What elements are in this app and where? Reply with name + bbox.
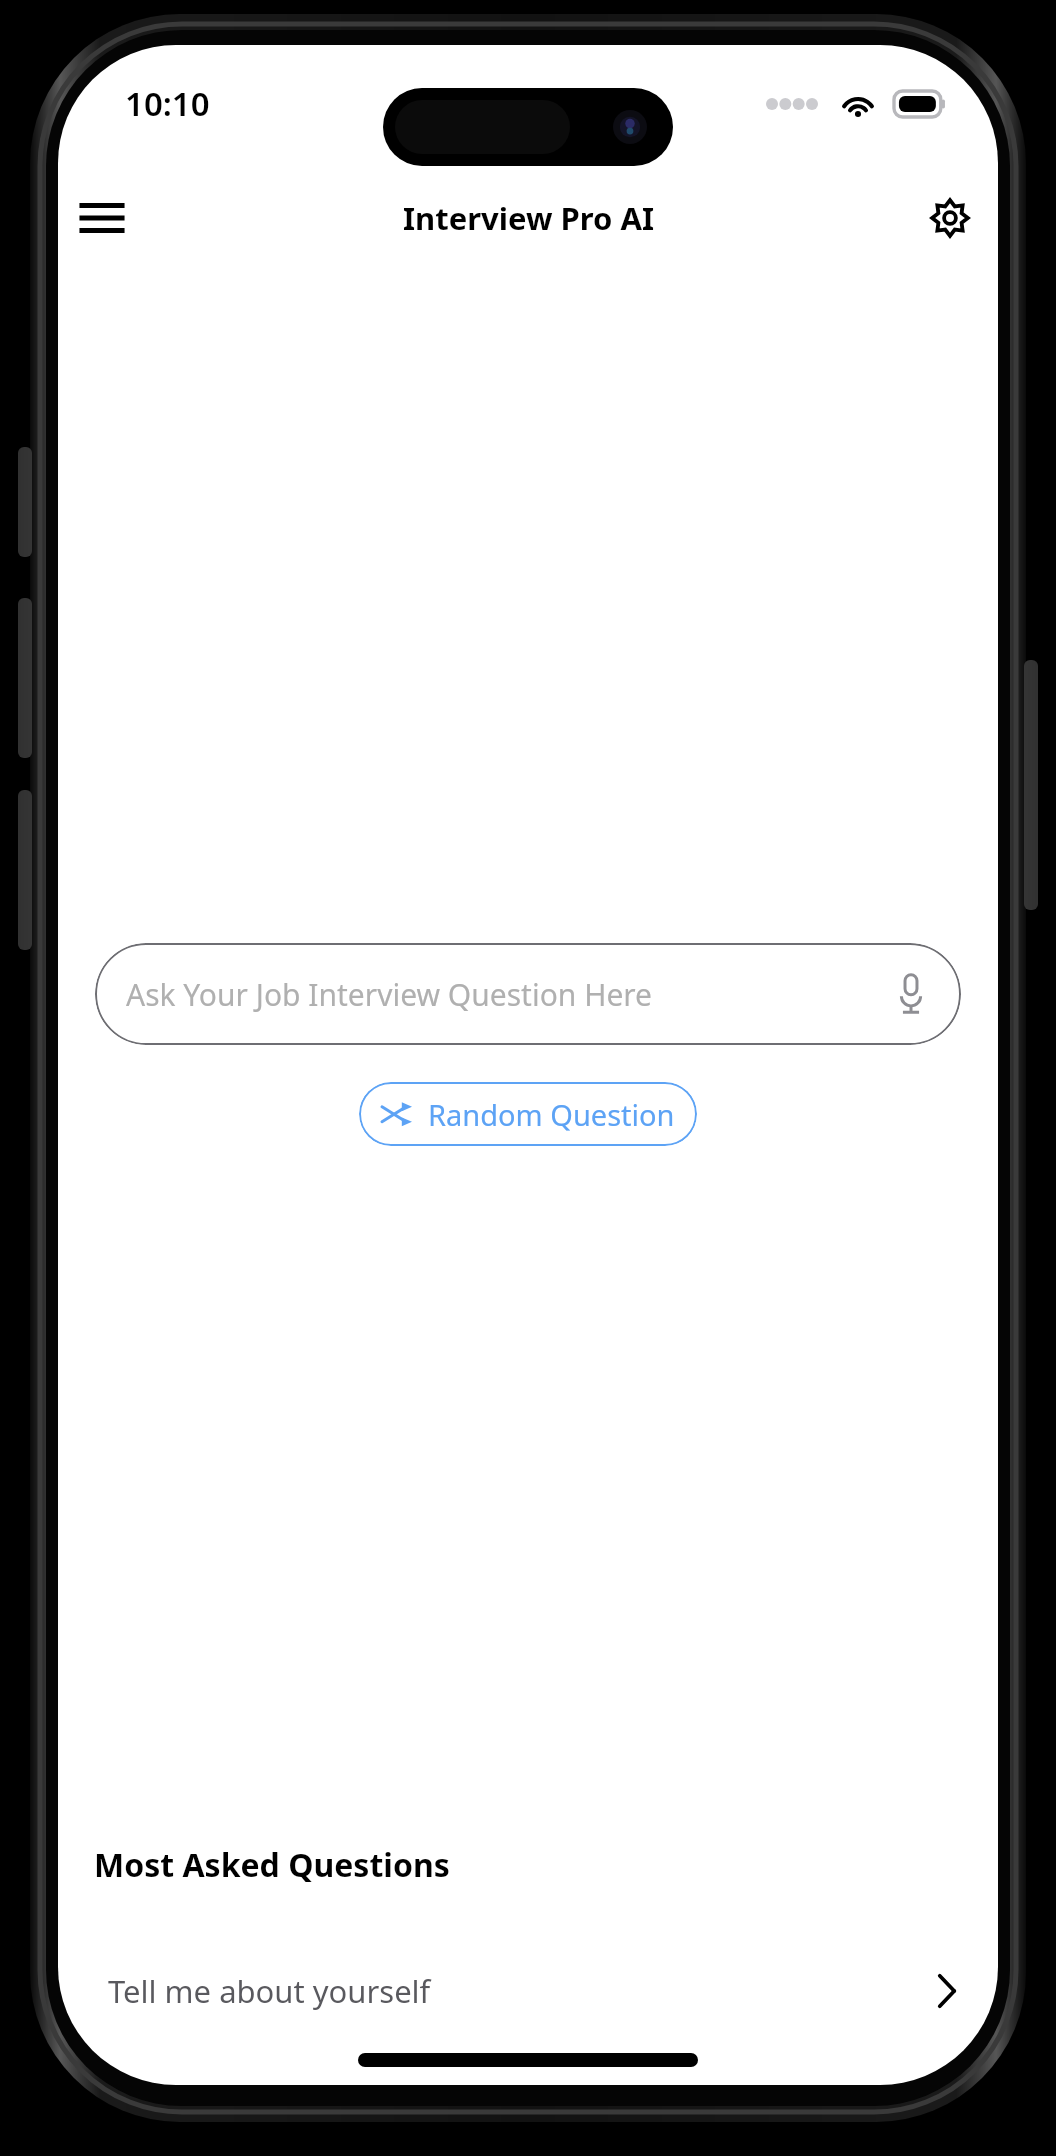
button[interactable]: Tell me about yourself [58,1943,998,2039]
staticText: Random Question [428,1095,675,1134]
button[interactable]: Ask Your Job Interview Question Here [95,943,961,1045]
staticText: Tell me about yourself [108,1970,431,2012]
staticText: Ask Your Job Interview Question Here [126,974,653,1015]
button[interactable]: Random Question [359,1082,697,1146]
button[interactable]: Menu [66,182,138,254]
staticText: Most Asked Questions [94,1843,450,1887]
staticText: 10:10 [125,81,210,126]
button[interactable]: Voice input [887,970,935,1018]
button[interactable]: Settings [914,182,986,254]
staticText: Interview Pro AI [403,197,654,239]
